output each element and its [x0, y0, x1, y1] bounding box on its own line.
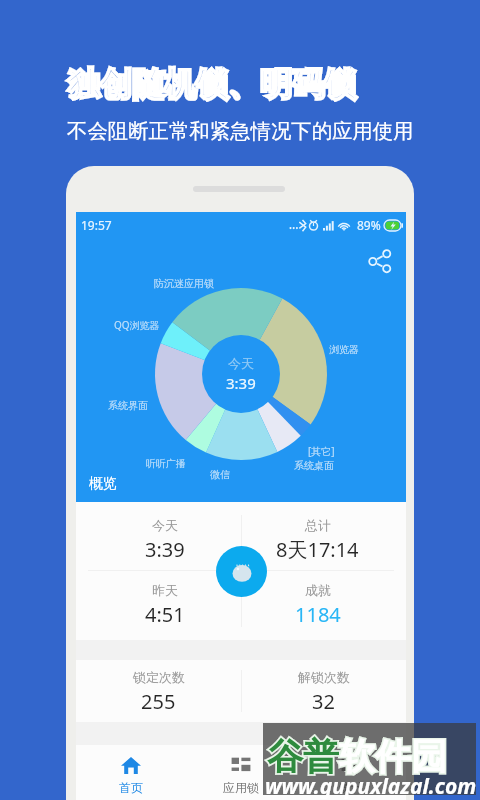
staticText: 概览: [89, 475, 117, 493]
button[interactable]: 首页: [76, 745, 186, 800]
staticText: 今天: [152, 517, 178, 533]
button[interactable]: 今天: [88, 502, 241, 570]
staticText: 32: [312, 688, 335, 715]
staticText: 不会阻断正常和紧急情况下的应用使用: [67, 118, 414, 144]
staticText: 锁定次数: [133, 669, 185, 685]
staticText: 系统界面: [108, 399, 148, 412]
staticText: 防沉迷应用锁: [154, 277, 214, 290]
staticText: 昨天: [152, 582, 178, 598]
staticText: www.gupuxlazal.com: [265, 772, 477, 800]
button[interactable]: 锁定次数: [76, 660, 241, 722]
staticText: 谷普: [267, 734, 339, 779]
button[interactable]: 解锁次数: [241, 660, 406, 722]
staticText: 谷普: [267, 734, 339, 779]
staticText: 3:39: [226, 373, 256, 393]
button[interactable]: 昨天: [88, 571, 241, 639]
button[interactable]: 总计: [241, 502, 394, 570]
staticText: 浏览器: [329, 343, 359, 356]
staticText: 软件园: [339, 734, 447, 779]
button[interactable]: 成就: [241, 571, 394, 639]
staticText: 今天: [228, 355, 254, 371]
staticText: [其它]: [308, 444, 335, 458]
staticText: 软件园: [339, 734, 447, 779]
button[interactable]: Start timer: [216, 546, 267, 597]
staticText: 微信: [210, 468, 230, 481]
staticText: 1184: [295, 601, 341, 628]
staticText: 19:57: [81, 217, 112, 233]
staticText: 应用锁: [223, 780, 259, 795]
staticText: QQ浏览器: [114, 318, 160, 332]
staticText: 解锁次数: [298, 669, 350, 685]
staticText: 首页: [119, 780, 143, 795]
staticText: 3:39: [145, 536, 185, 563]
staticText: 成就: [305, 582, 331, 598]
staticText: 255: [141, 688, 176, 715]
staticText: 总计: [305, 517, 331, 533]
button[interactable]: Share: [368, 249, 392, 273]
staticText: 89%: [357, 217, 381, 233]
staticText: 系统桌面: [294, 459, 334, 472]
staticText: 8天17:14: [276, 536, 359, 563]
staticText: 独创随机锁、明码锁: [68, 64, 356, 104]
staticText: 统计: [339, 780, 363, 795]
staticText: 4:51: [145, 601, 185, 628]
button[interactable]: 应用锁: [186, 745, 296, 800]
button[interactable]: 统计: [296, 745, 406, 800]
staticText: 听听广播: [146, 457, 186, 470]
